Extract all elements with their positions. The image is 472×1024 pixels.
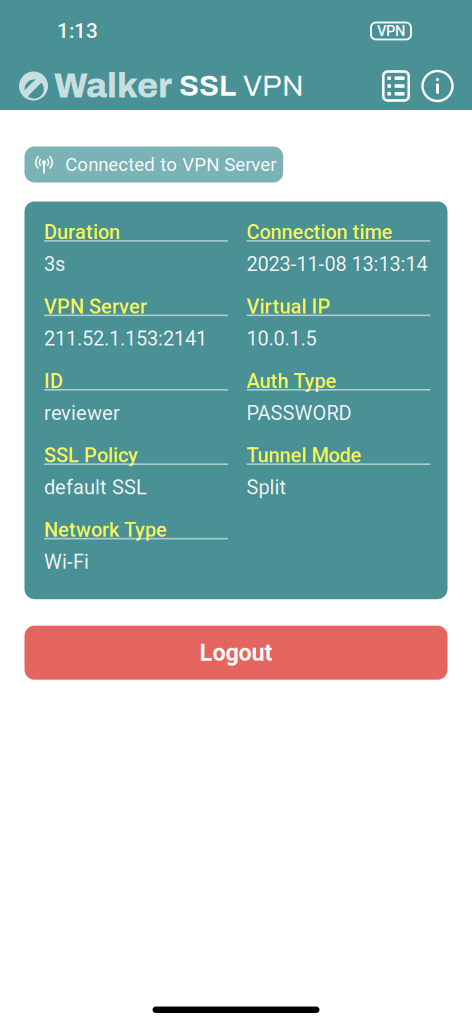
button[interactable]: Logout xyxy=(24,626,447,680)
staticText: Logout xyxy=(199,639,272,666)
staticText: VPN xyxy=(243,70,304,102)
staticText: 3s xyxy=(44,252,65,276)
staticText: PASSWORD xyxy=(246,401,351,425)
staticText: ID xyxy=(44,369,63,393)
staticText: default SSL xyxy=(44,476,147,499)
staticText: Tunnel Mode xyxy=(246,444,361,467)
staticText: SSL Policy xyxy=(44,444,138,467)
staticText: 1:13 xyxy=(57,19,98,43)
staticText: 10.0.1.5 xyxy=(246,327,316,350)
staticText: Auth Type xyxy=(246,369,336,393)
staticText: Split xyxy=(246,476,286,499)
staticText: 211.52.1.153:2141 xyxy=(44,327,207,350)
staticText: Connection time xyxy=(246,220,392,244)
staticText: VPN xyxy=(377,22,405,40)
button[interactable]: About xyxy=(422,66,453,106)
staticText: SSL xyxy=(179,70,236,102)
staticText: VPN Server xyxy=(44,295,147,318)
staticText: 2023-11-08 13:13:14 xyxy=(246,252,427,276)
staticText: Walker xyxy=(54,67,172,105)
staticText: reviewer xyxy=(44,401,120,425)
staticText: Virtual IP xyxy=(246,295,330,318)
button[interactable]: Connection log xyxy=(381,66,411,106)
staticText: Connected to VPN Server xyxy=(65,154,276,175)
staticText: Network Type xyxy=(44,518,167,542)
staticText: Duration xyxy=(44,220,120,244)
staticText: Wi-Fi xyxy=(44,550,89,574)
